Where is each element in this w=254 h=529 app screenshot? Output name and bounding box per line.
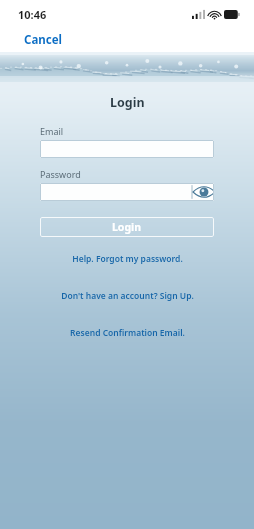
button[interactable]	[40, 140, 214, 158]
button[interactable]: Don't have an account? Sign Up.	[0, 288, 254, 304]
staticText: Login	[112, 220, 142, 234]
button[interactable]: Help. Forgot my password.	[0, 251, 254, 267]
button[interactable]: Show password	[192, 183, 214, 201]
staticText: Don't have an account? Sign Up.	[61, 290, 194, 302]
button[interactable]: Resend Confirmation Email.	[0, 325, 254, 341]
staticText: Resend Confirmation Email.	[70, 327, 185, 339]
button[interactable]: Show password	[40, 183, 214, 201]
button[interactable]: Cancel	[0, 29, 74, 51]
staticText: Password	[40, 168, 81, 180]
button[interactable]: Login	[40, 217, 214, 237]
staticText: Help. Forgot my password.	[72, 253, 183, 265]
staticText: Login	[110, 94, 145, 111]
staticText: Cancel	[24, 32, 62, 48]
staticText: 10:46	[18, 7, 47, 22]
staticText: Email	[40, 125, 64, 137]
